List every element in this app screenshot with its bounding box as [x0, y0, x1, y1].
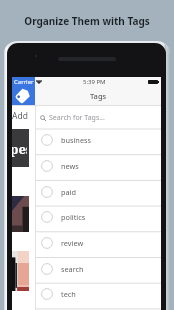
staticText: news [61, 161, 79, 171]
staticText: 5:39 PM [83, 78, 106, 86]
button[interactable]: paid [35, 179, 161, 205]
staticText: paid [61, 187, 76, 197]
button[interactable]: tech [35, 281, 161, 307]
button[interactable]: search [35, 256, 161, 282]
staticText: Carrier [14, 78, 34, 86]
staticText: Tags [90, 91, 107, 101]
staticText: Organize Them with Tags [0, 14, 174, 28]
staticText: tech [61, 289, 76, 299]
button[interactable]: news [35, 153, 161, 179]
staticText: Add [12, 110, 28, 122]
button[interactable]: business [35, 127, 161, 153]
staticText: pes [12, 140, 27, 158]
staticText: politics [61, 212, 86, 222]
staticText: search [61, 264, 84, 274]
button[interactable]: Tags app icon [12, 77, 35, 105]
button[interactable]: politics [35, 204, 161, 230]
staticText: review [61, 238, 84, 248]
staticText: business [61, 135, 91, 145]
staticText: Search for Tags... [49, 113, 105, 123]
button[interactable]: review [35, 230, 161, 256]
